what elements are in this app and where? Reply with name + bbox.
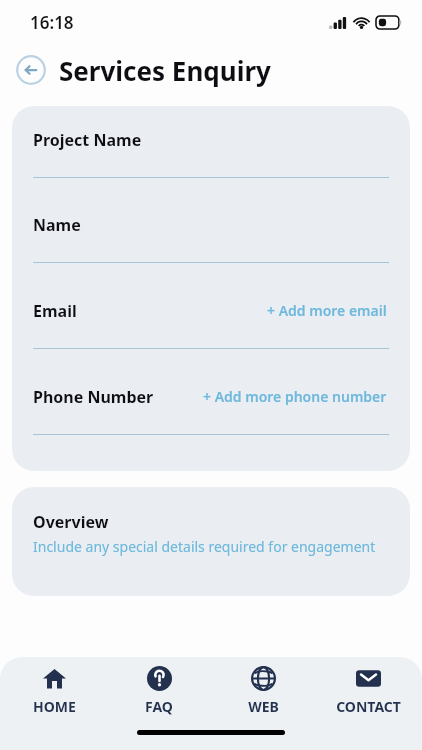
button[interactable]: FAQ	[109, 662, 209, 720]
button[interactable]: + Add more email	[265, 299, 389, 322]
staticText: + Add more email	[267, 301, 387, 320]
staticText: Overview	[33, 511, 109, 533]
staticText: Name	[33, 214, 81, 236]
button[interactable]: HOME	[4, 662, 104, 720]
staticText: Include any special details required for…	[33, 537, 376, 556]
staticText: Services Enquiry	[59, 53, 271, 88]
staticText: HOME	[33, 697, 76, 716]
staticText: + Add more phone number	[203, 387, 387, 406]
staticText: Email	[33, 300, 77, 322]
button[interactable]: CONTACT	[318, 662, 418, 720]
staticText: CONTACT	[336, 697, 401, 716]
staticText: FAQ	[145, 697, 173, 716]
staticText: WEB	[248, 697, 279, 716]
button[interactable]: Back	[14, 53, 48, 87]
staticText: 16:18	[30, 11, 74, 34]
staticText: Phone Number	[33, 386, 154, 408]
staticText: Project Name	[33, 129, 142, 151]
button[interactable]: + Add more phone number	[201, 385, 389, 408]
button[interactable]: WEB	[213, 662, 313, 720]
